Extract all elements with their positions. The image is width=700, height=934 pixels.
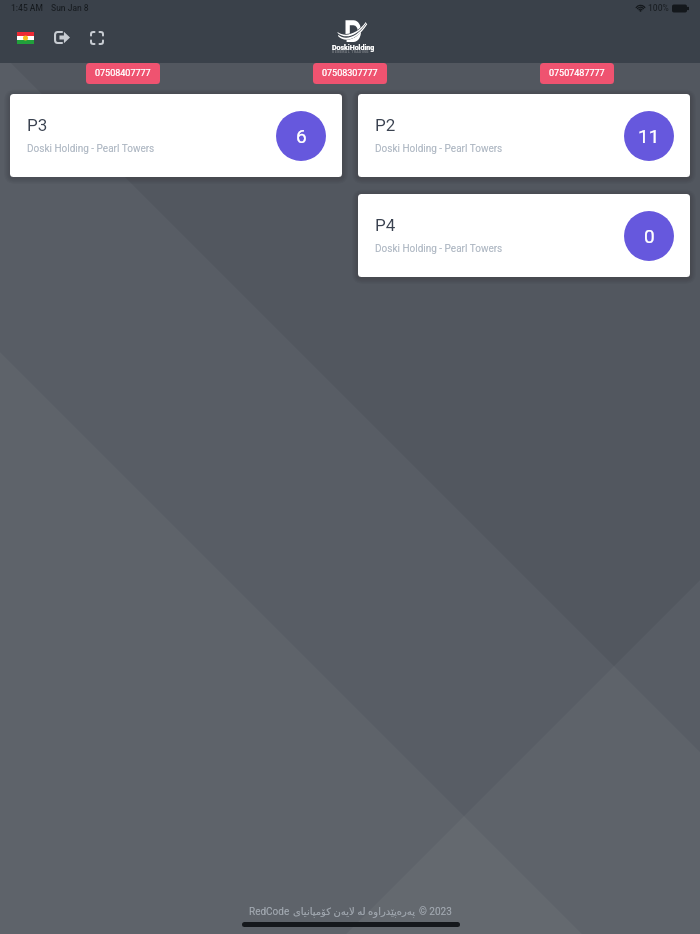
button[interactable]: 07508407777: [86, 63, 160, 84]
staticText: P3: [27, 115, 48, 135]
button[interactable]: P3: [10, 94, 342, 177]
button[interactable]: 07507487777: [540, 63, 614, 84]
staticText: P2: [375, 115, 396, 135]
button[interactable]: P2: [358, 94, 690, 177]
staticText: RedCode: [249, 906, 290, 918]
button[interactable]: Doski Holding: [330, 18, 377, 55]
staticText: © 2023: [419, 906, 452, 918]
staticText: 100%: [648, 3, 669, 13]
staticText: Doski Holding - Pearl Towers: [27, 143, 155, 155]
staticText: پەرەپێدراوە لە لایەن کۆمپانیای: [293, 906, 416, 918]
button[interactable]: Language: [13, 27, 38, 48]
staticText: 6: [296, 125, 307, 147]
staticText: 1:45 AM: [11, 3, 43, 13]
button[interactable]: Logout: [50, 27, 73, 48]
button[interactable]: P4: [358, 194, 690, 277]
staticText: DoskiHolding: [332, 44, 375, 52]
staticText: Doski Holding - Pearl Towers: [375, 143, 503, 155]
staticText: P4: [375, 215, 396, 235]
staticText: 07508307777: [322, 68, 378, 79]
staticText: Doski Holding - Pearl Towers: [375, 243, 503, 255]
staticText: 0: [644, 225, 655, 247]
button[interactable]: 07508307777: [313, 63, 387, 84]
staticText: 07507487777: [549, 68, 605, 79]
button[interactable]: Fullscreen: [86, 27, 107, 48]
staticText: Sun Jan 8: [51, 3, 89, 13]
staticText: 07508407777: [95, 68, 151, 79]
staticText: 11: [638, 125, 660, 147]
staticText: GENERAL TRADING: [332, 50, 370, 54]
